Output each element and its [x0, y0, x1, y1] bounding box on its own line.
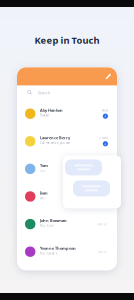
staticText: Now [102, 109, 108, 112]
staticText: Keep in Touch [34, 34, 99, 46]
staticText: 2 mins [99, 136, 108, 140]
staticText: Lawrence Berry [40, 135, 70, 140]
staticText: You: Cool [40, 224, 54, 227]
staticText: Jun 21 [98, 250, 108, 253]
staticText: John Bowman [40, 218, 67, 223]
staticText: You: [40, 169, 46, 172]
staticText: You: Great! I [40, 252, 57, 255]
staticText: Yvonne Thompson [40, 245, 76, 251]
button[interactable]: Search [17, 85, 117, 100]
staticText: Jun 21 [98, 222, 108, 226]
button[interactable]: Compose [105, 73, 117, 80]
button[interactable]: Tom [17, 155, 117, 183]
staticText: Tom [40, 163, 48, 168]
staticText: 2 [104, 142, 106, 145]
staticText: OK ! [40, 196, 46, 200]
staticText: Ivan [40, 190, 48, 196]
staticText: Search [38, 90, 50, 95]
staticText: Thanks! [40, 114, 49, 117]
button[interactable]: Yvonne Thompson [17, 238, 117, 265]
staticText: Aby Hankon [40, 107, 63, 113]
staticText: Call me when you can [40, 141, 70, 145]
button[interactable]: Ivan [17, 183, 117, 210]
staticText: 3 [104, 114, 106, 118]
button[interactable]: John Bowman [17, 210, 117, 238]
button[interactable]: Lawrence Berry [17, 127, 117, 155]
button[interactable]: Aby Hankon [17, 100, 117, 127]
